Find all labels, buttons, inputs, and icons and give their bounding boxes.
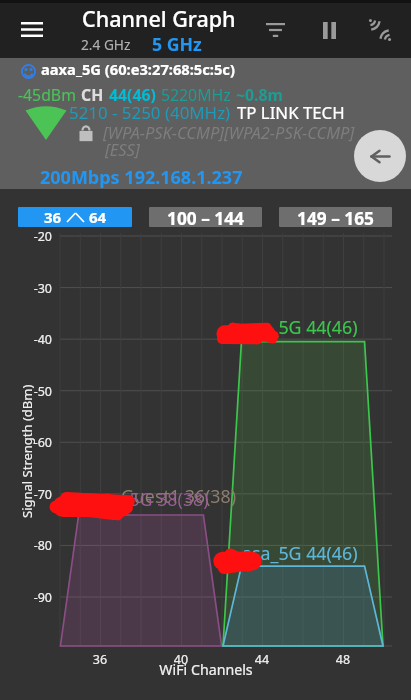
staticText: 40	[166, 651, 196, 668]
staticText: 5210 - 5250 (40MHz)	[69, 101, 231, 124]
button[interactable]: Open navigation menu	[10, 7, 54, 51]
button[interactable]: 149 – 165	[279, 207, 392, 227]
staticText: -30	[20, 280, 52, 297]
button[interactable]: Filter access points	[255, 10, 295, 50]
staticText: -80	[20, 537, 52, 554]
staticText: -20	[20, 228, 52, 245]
staticText: [ESS]	[105, 138, 140, 160]
staticText: aaxa_5G (60:e3:27:68:5c:5c)	[41, 59, 235, 79]
staticText: TP LINK TECH	[237, 101, 345, 124]
staticText: -50	[20, 383, 52, 400]
staticText: -90	[20, 589, 52, 606]
staticText: 149 – 165	[297, 207, 375, 227]
button[interactable]: Pause scanning	[309, 10, 349, 50]
staticText: _Guest1 36(38)	[113, 484, 237, 508]
staticText: -70	[20, 486, 52, 503]
staticText: 44(46)	[109, 84, 156, 106]
staticText: 36	[85, 651, 115, 668]
staticText: Signal Strength (dBm)	[18, 384, 36, 518]
button[interactable]: 36	[18, 207, 132, 227]
staticText: Channel Graph	[82, 4, 236, 33]
staticText: asa_5G 44(46)	[242, 315, 358, 339]
button[interactable]: Back	[354, 130, 406, 182]
staticText: 36	[44, 207, 62, 227]
button[interactable]: Access point details	[360, 10, 400, 50]
staticText: -60	[20, 434, 52, 451]
staticText: asa_5G 44(46)	[242, 541, 358, 565]
staticText: s_5G 38(38)	[113, 487, 209, 511]
staticText: 5220MHz	[161, 84, 231, 106]
staticText: 200Mbps 192.168.1.237	[40, 165, 243, 190]
staticText: [WPA-PSK-CCMP][WPA2-PSK-CCMP]	[103, 121, 355, 143]
staticText: 44	[247, 651, 277, 668]
staticText: -40	[20, 331, 52, 348]
staticText: 64	[89, 207, 107, 227]
staticText: WiFi Channels	[126, 660, 286, 679]
staticText: ~0.8m	[236, 84, 283, 106]
staticText: CH	[81, 84, 104, 106]
staticText: 100 – 144	[167, 207, 245, 227]
staticText: 48	[328, 651, 358, 668]
staticText: -45dBm	[18, 84, 76, 106]
button[interactable]: 5 GHz	[152, 32, 202, 56]
button[interactable]: 2.4 GHz	[81, 35, 131, 54]
button[interactable]: 100 – 144	[149, 207, 262, 227]
